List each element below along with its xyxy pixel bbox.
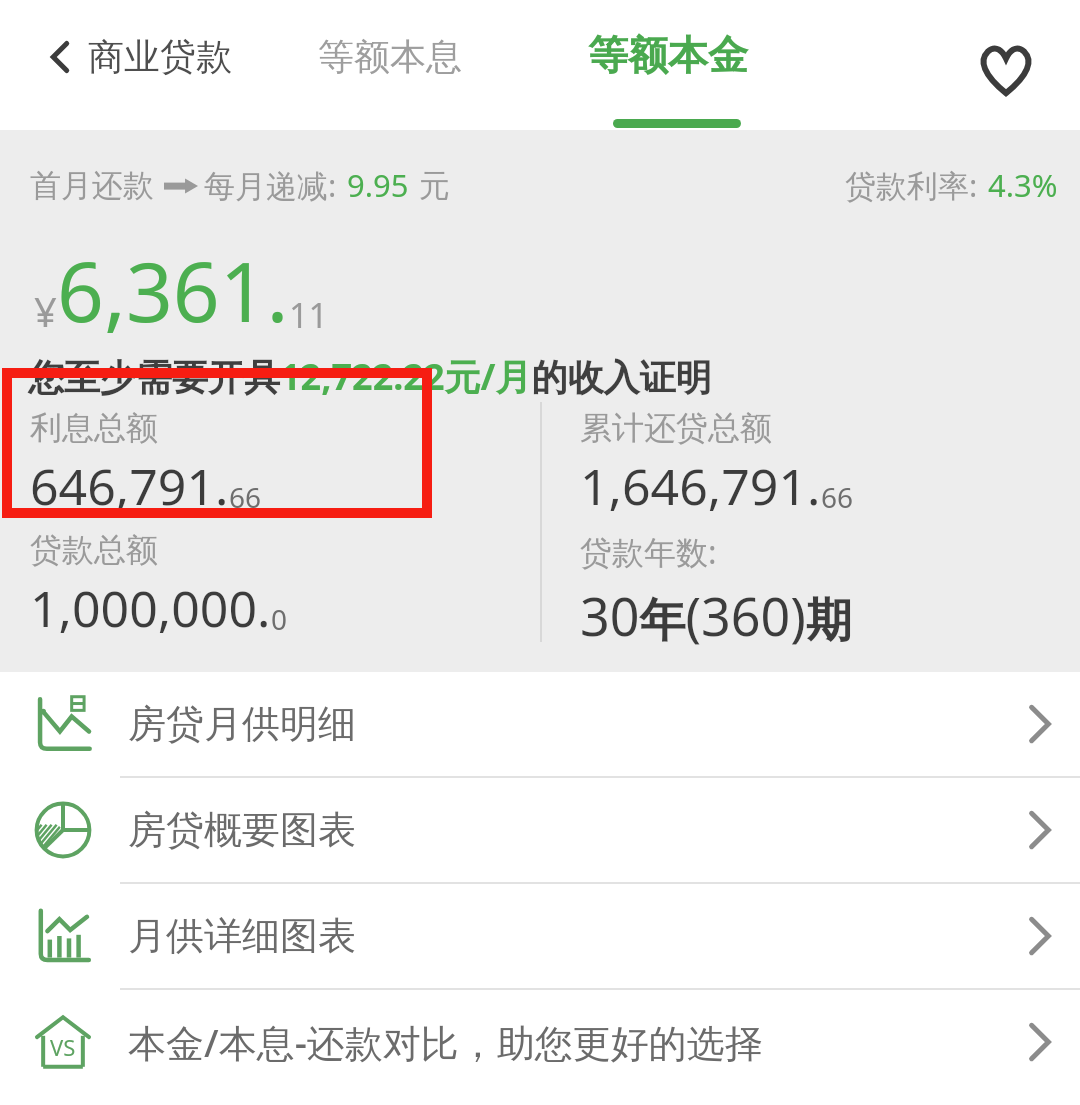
button[interactable]: 商业贷款 bbox=[40, 28, 240, 85]
staticText: ¥ bbox=[34, 284, 57, 338]
staticText: 66 bbox=[229, 478, 262, 516]
staticText: 房贷月供明细 bbox=[128, 700, 356, 748]
staticText: 累计还贷总额 bbox=[580, 408, 772, 448]
staticText: VS bbox=[50, 1032, 76, 1062]
staticText: 元 bbox=[419, 166, 450, 205]
staticText: 首月还款 bbox=[30, 166, 154, 205]
staticText: 利息总额 bbox=[30, 408, 158, 448]
staticText: 等额本息 bbox=[318, 34, 462, 79]
staticText: 1,646,791. bbox=[580, 452, 821, 520]
staticText: 您至少需要开具12,722.22元/月的收入证明 bbox=[28, 352, 712, 401]
staticText: 等额本金 bbox=[588, 30, 748, 80]
staticText: 4.3% bbox=[988, 164, 1058, 206]
staticText: 646,791. bbox=[30, 452, 229, 520]
button[interactable]: 房贷月供明细 bbox=[0, 672, 1080, 776]
staticText: 贷款年数: bbox=[580, 530, 717, 574]
button[interactable]: 等额本金 bbox=[578, 24, 758, 86]
staticText: 6,361. bbox=[57, 234, 289, 346]
staticText: 每月递减: bbox=[204, 164, 337, 206]
staticText: 11 bbox=[289, 292, 328, 338]
button[interactable]: 房贷概要图表 bbox=[0, 778, 1080, 882]
staticText: 贷款利率: bbox=[845, 164, 978, 206]
button[interactable]: 等额本息 bbox=[308, 28, 472, 85]
button[interactable]: VS bbox=[0, 990, 1080, 1094]
staticText: 30年(360)期 bbox=[580, 580, 852, 651]
staticText: 1,000,000. bbox=[30, 574, 271, 642]
staticText: 9.95 bbox=[347, 164, 409, 206]
button[interactable]: 月供详细图表 bbox=[0, 884, 1080, 988]
staticText: 0 bbox=[271, 600, 288, 638]
staticText: 66 bbox=[821, 478, 854, 516]
staticText: 房贷概要图表 bbox=[128, 806, 356, 854]
staticText: 本金/本息-还款对比，助您更好的选择 bbox=[128, 1016, 763, 1068]
staticText: 商业贷款 bbox=[88, 34, 232, 79]
staticText: 月供详细图表 bbox=[128, 912, 356, 960]
staticText: 贷款总额 bbox=[30, 530, 158, 570]
button[interactable]: 收藏 bbox=[968, 32, 1044, 108]
